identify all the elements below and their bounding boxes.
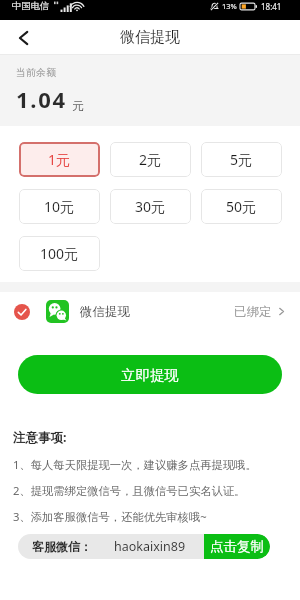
button[interactable]: 2元 — [110, 142, 191, 177]
staticText: 13% — [222, 1, 237, 11]
staticText: 1.04 — [16, 84, 67, 114]
staticText: 5元 — [230, 150, 253, 169]
button[interactable]: 1元 — [19, 142, 100, 177]
staticText: 50元 — [226, 197, 257, 216]
staticText: 客服微信： — [32, 539, 92, 554]
staticText: 点击复制 — [210, 538, 264, 555]
staticText: 注意事项: — [13, 429, 67, 446]
button[interactable]: 微信提现 — [0, 292, 300, 331]
staticText: 30元 — [135, 197, 166, 216]
staticText: 微信提现 — [120, 28, 180, 47]
staticText: 立即提现 — [121, 366, 179, 384]
staticText: 1、每人每天限提现一次，建议赚多点再提现哦。 — [13, 457, 257, 472]
button[interactable]: 50元 — [201, 189, 282, 224]
staticText: 微信提现 — [80, 304, 130, 320]
staticText: 元 — [72, 99, 84, 113]
staticText: 100元 — [40, 244, 79, 263]
button[interactable]: 30元 — [110, 189, 191, 224]
staticText: 18:41 — [261, 1, 282, 12]
button[interactable]: 点击复制 — [204, 534, 270, 559]
button[interactable]: Back — [9, 24, 37, 52]
button[interactable]: 5元 — [201, 142, 282, 177]
staticText: 中国电信 — [12, 0, 50, 12]
staticText: 2、提现需绑定微信号，且微信号已实名认证。 — [13, 483, 246, 498]
staticText: 1元 — [48, 150, 71, 169]
staticText: 10元 — [44, 197, 75, 216]
button[interactable]: 10元 — [19, 189, 100, 224]
staticText: 当前余额 — [16, 66, 56, 79]
staticText: 已绑定 — [234, 304, 272, 320]
staticText: haokaixin89 — [114, 538, 186, 555]
button[interactable]: 100元 — [19, 236, 100, 271]
button[interactable]: 立即提现 — [18, 355, 282, 394]
staticText: 3、添加客服微信号，还能优先审核哦~ — [13, 509, 207, 524]
staticText: 2元 — [139, 150, 162, 169]
